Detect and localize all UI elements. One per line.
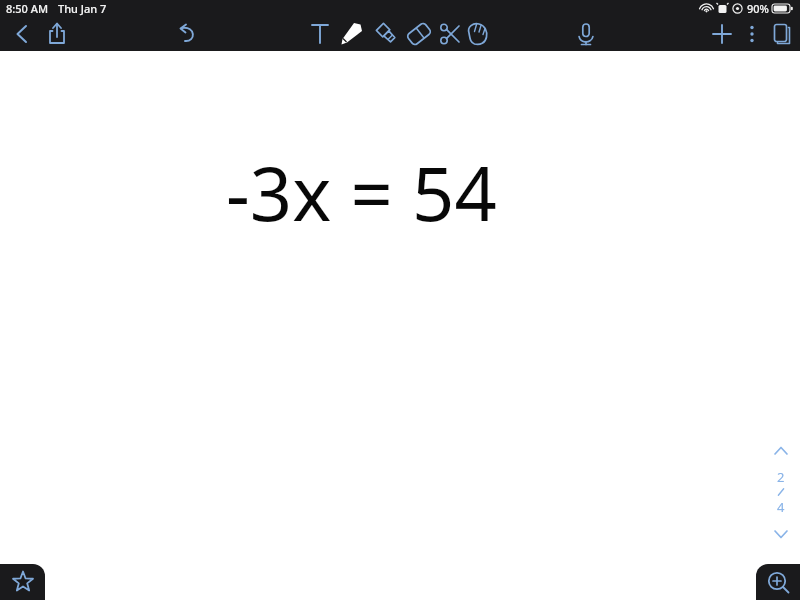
staticText: Thu Jan 7: [58, 1, 107, 16]
button[interactable]: Undo: [171, 17, 205, 51]
button[interactable]: Previous page: [766, 440, 796, 462]
button[interactable]: More options: [735, 17, 769, 51]
button[interactable]: Zoom in: [756, 564, 800, 600]
button[interactable]: Record audio: [569, 17, 603, 51]
button[interactable]: Cut tool: [433, 17, 467, 51]
staticText: 2: [777, 468, 785, 486]
button[interactable]: Share: [40, 17, 74, 51]
button[interactable]: Back: [5, 17, 39, 51]
staticText: -3x = 54: [226, 142, 497, 243]
staticText: 8:50 AM: [6, 1, 49, 16]
button[interactable]: Selection tool: [461, 17, 495, 51]
button[interactable]: Highlighter tool: [370, 17, 404, 51]
button[interactable]: Pen tool: [335, 17, 369, 51]
button[interactable]: Text tool: [303, 17, 337, 51]
button[interactable]: Pages: [765, 17, 799, 51]
button[interactable]: Next page: [766, 523, 796, 545]
button[interactable]: Favorite: [0, 564, 45, 600]
button[interactable]: Eraser tool: [402, 17, 436, 51]
staticText: 90%: [747, 1, 769, 16]
button[interactable]: Add: [705, 17, 739, 51]
staticText: 4: [777, 498, 785, 516]
